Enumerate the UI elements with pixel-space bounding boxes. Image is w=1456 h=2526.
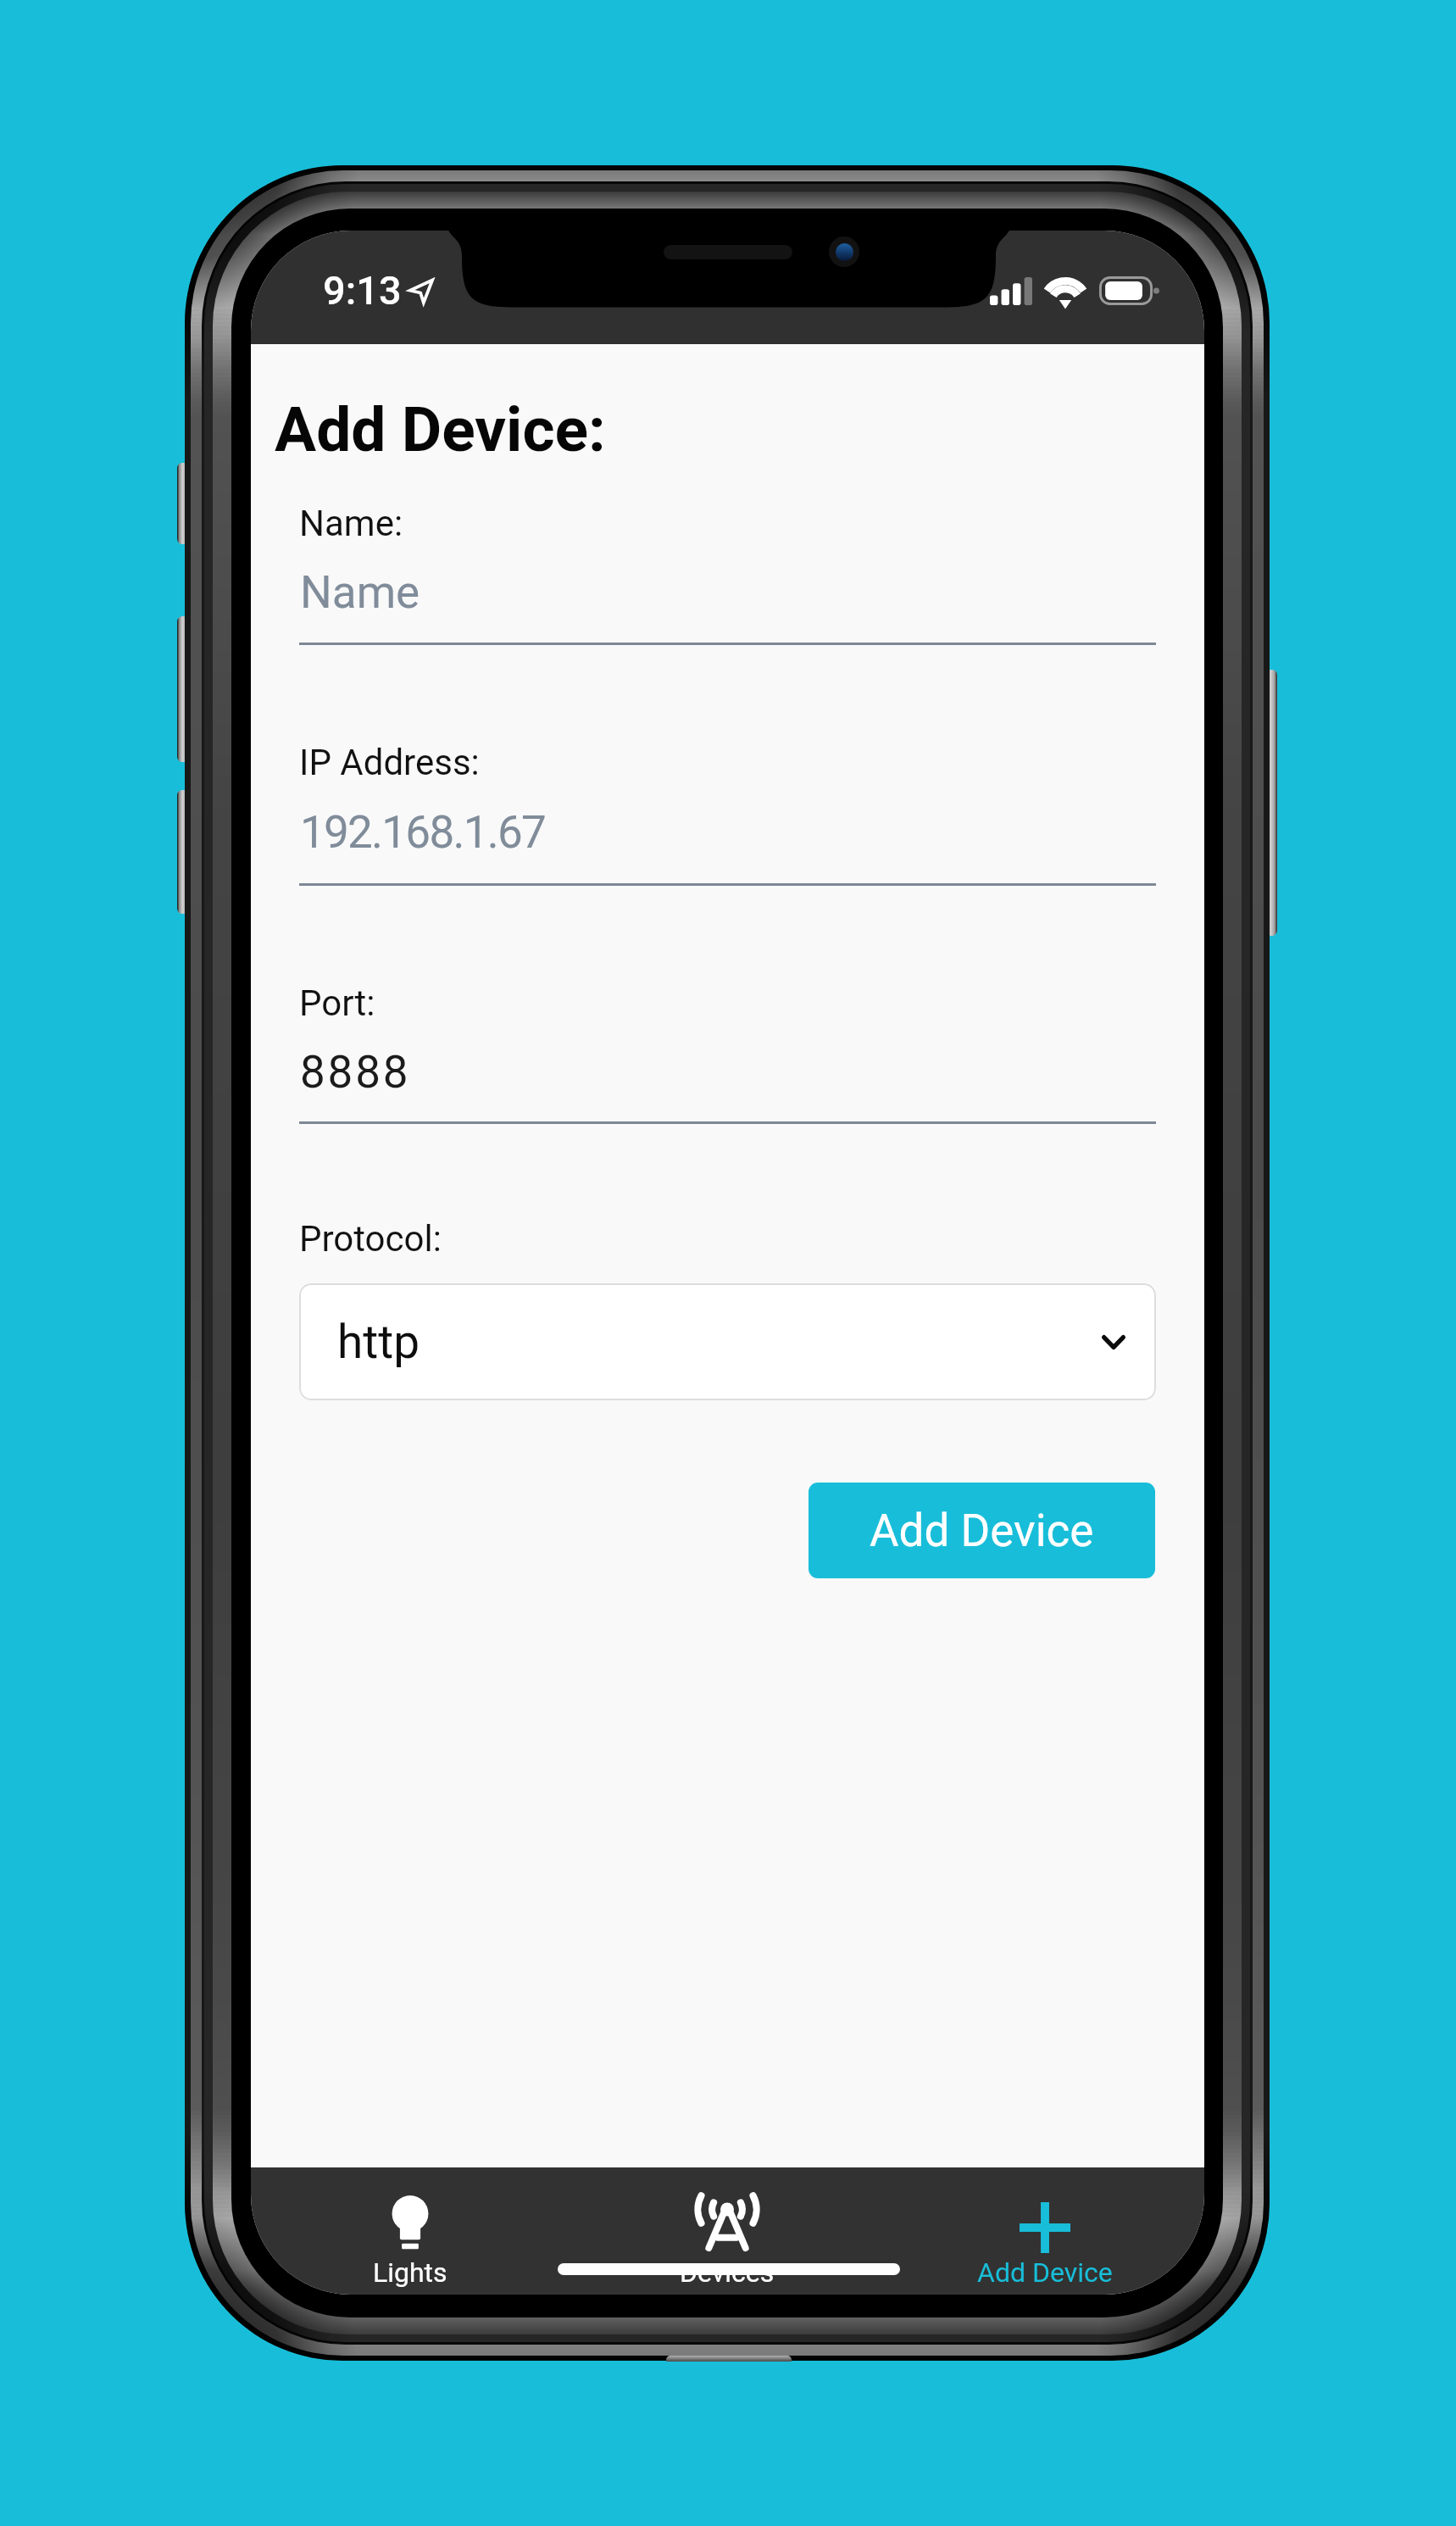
staticText: Add Device bbox=[870, 1505, 1094, 1557]
staticText: Add Device: bbox=[275, 393, 606, 466]
button[interactable]: http bbox=[299, 1283, 1156, 1400]
staticText: Add Device bbox=[977, 2256, 1113, 2289]
staticText: 192.168.1.67 bbox=[300, 806, 546, 859]
button[interactable]: Lights bbox=[252, 2167, 569, 2295]
staticText: Devices bbox=[680, 2256, 775, 2289]
button[interactable]: Add Device bbox=[886, 2167, 1203, 2295]
staticText: Name: bbox=[299, 503, 403, 544]
staticText: http bbox=[337, 1315, 420, 1369]
staticText: Lights bbox=[373, 2256, 447, 2289]
staticText: Protocol: bbox=[299, 1218, 442, 1260]
staticText: IP Address: bbox=[299, 742, 480, 783]
staticText: 9:13 bbox=[323, 267, 402, 314]
staticText: Port: bbox=[299, 982, 375, 1024]
staticText: Name bbox=[300, 566, 420, 619]
button[interactable]: Add Device bbox=[809, 1483, 1155, 1578]
button[interactable]: Devices bbox=[569, 2167, 886, 2295]
staticText: 8888 bbox=[300, 1046, 411, 1099]
